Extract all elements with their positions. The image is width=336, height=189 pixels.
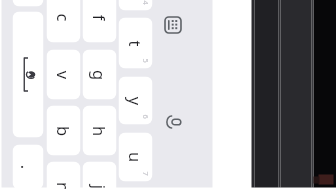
button[interactable]: b	[46, 105, 80, 155]
staticText: 6	[140, 114, 150, 119]
button[interactable]: Space	[12, 11, 43, 137]
staticText: c	[52, 13, 74, 21]
button[interactable]: Voice input	[160, 110, 185, 132]
staticText: t	[124, 40, 146, 46]
button[interactable]: h	[82, 105, 116, 155]
staticText: u	[124, 151, 146, 162]
button[interactable]: g	[82, 49, 116, 99]
button[interactable]: ,	[12, 0, 43, 6]
staticText: g	[88, 69, 110, 80]
button[interactable]: .	[12, 144, 43, 189]
staticText: .	[16, 164, 38, 169]
button[interactable]: f	[82, 0, 116, 42]
button[interactable]: Keyboard layouts	[160, 13, 185, 35]
staticText: 7	[140, 171, 150, 176]
button[interactable]: j	[82, 161, 116, 189]
button[interactable]: r	[118, 0, 152, 10]
button[interactable]: y	[118, 76, 152, 124]
staticText: 4	[140, 0, 150, 5]
staticText: h	[88, 125, 110, 136]
button[interactable]: t	[118, 17, 152, 68]
staticText: b	[52, 125, 74, 136]
staticText: y	[124, 96, 146, 105]
staticText: v	[52, 70, 74, 79]
button[interactable]: n	[46, 161, 80, 189]
staticText: j	[88, 184, 110, 189]
button[interactable]: c	[46, 0, 80, 42]
staticText: f	[88, 14, 110, 20]
button[interactable]: v	[46, 49, 80, 99]
staticText: n	[52, 181, 74, 189]
staticText: 5	[140, 58, 150, 63]
button[interactable]: u	[118, 132, 152, 181]
